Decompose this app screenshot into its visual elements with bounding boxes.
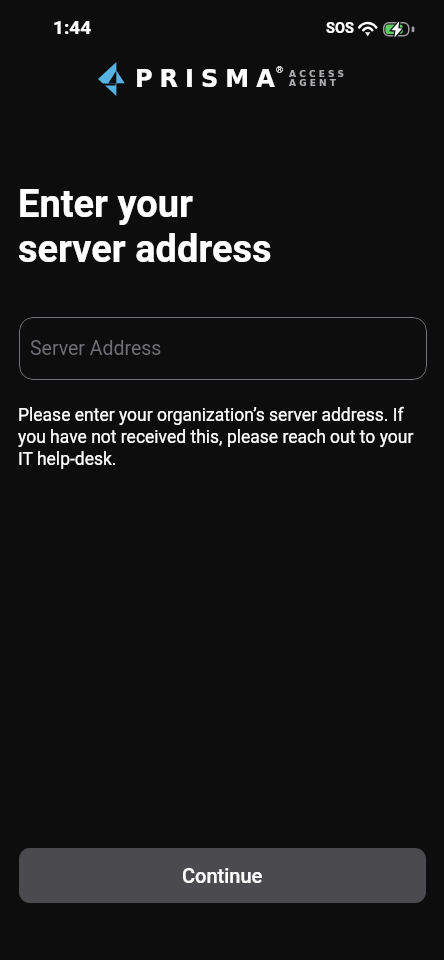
- other: Battery charging: [383, 16, 415, 42]
- other: Wi-Fi: [357, 20, 379, 38]
- staticText: Continue: [182, 864, 263, 887]
- staticText: Enter your: [18, 182, 193, 227]
- staticText: PRISMA: [135, 65, 282, 93]
- staticText: Server Address: [30, 337, 162, 360]
- staticText: 1:44: [53, 16, 92, 38]
- staticText: AGENT: [289, 78, 340, 88]
- staticText: server address: [18, 227, 272, 272]
- staticText: ®: [276, 65, 284, 76]
- staticText: Please enter your organization’s server …: [18, 405, 424, 470]
- staticText: ACCESS: [289, 69, 348, 79]
- button[interactable]: Server Address: [19, 317, 427, 380]
- button[interactable]: Continue: [19, 848, 426, 903]
- staticText: SOS: [326, 20, 354, 37]
